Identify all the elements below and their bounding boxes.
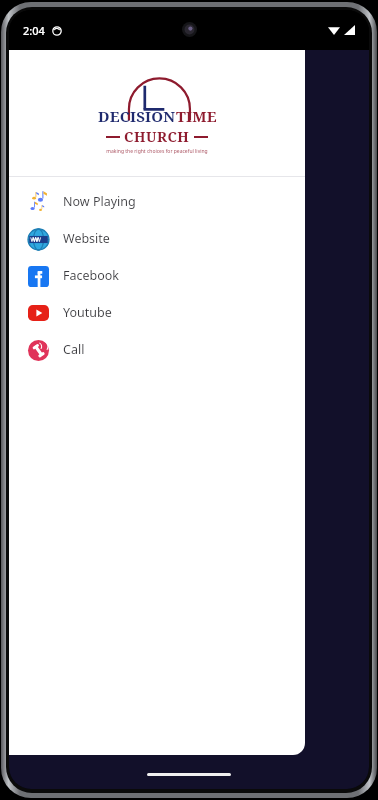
other: Website xyxy=(28,229,49,250)
staticText: CHURCH xyxy=(124,127,190,146)
staticText: Now Playing xyxy=(63,193,136,210)
other: Now Playing xyxy=(27,191,49,213)
button[interactable]: Call xyxy=(9,331,305,368)
button[interactable]: Website xyxy=(9,220,305,257)
staticText: Youtube xyxy=(63,304,112,321)
other: Youtube xyxy=(28,305,49,321)
other: Call xyxy=(28,340,49,361)
staticText: Website xyxy=(63,230,110,247)
button[interactable]: Facebook xyxy=(9,257,305,294)
staticText: Call xyxy=(63,341,85,358)
staticText: 2:04 xyxy=(23,23,45,38)
staticText: DECISION xyxy=(98,106,176,126)
button[interactable]: Youtube xyxy=(9,294,305,331)
button[interactable]: Now Playing xyxy=(9,183,305,220)
staticText: making the right choices for peaceful li… xyxy=(106,148,208,155)
staticText: Facebook xyxy=(63,267,120,284)
staticText: TIME xyxy=(176,106,217,126)
other: Facebook xyxy=(28,266,49,287)
